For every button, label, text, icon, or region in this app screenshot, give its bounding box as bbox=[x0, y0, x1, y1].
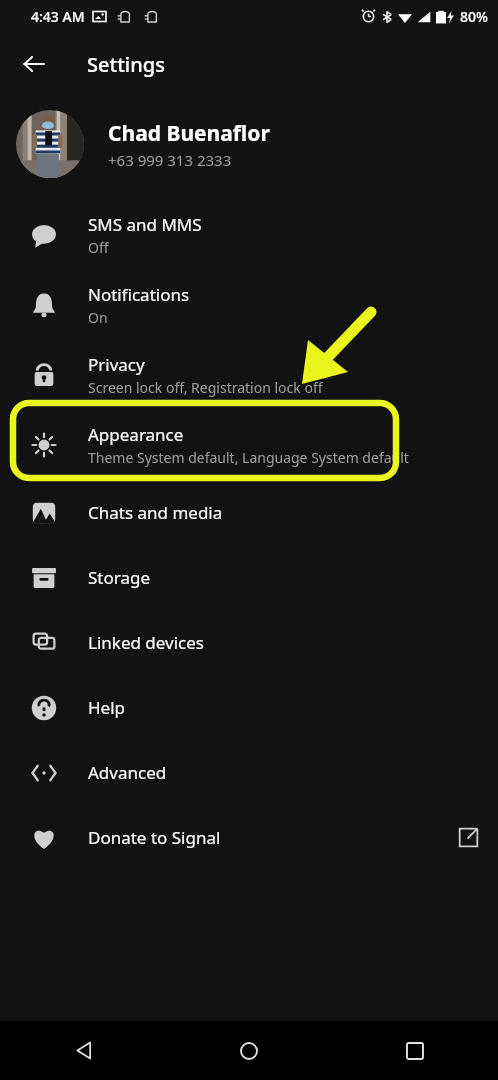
button[interactable]: Donate to Signal bbox=[0, 805, 498, 870]
staticText: Storage bbox=[88, 566, 151, 589]
staticText: 4:43 AM bbox=[31, 7, 85, 26]
staticText: Chats and media bbox=[88, 501, 223, 524]
staticText: Screen lock off, Registration lock off bbox=[88, 378, 323, 397]
button[interactable]: Back bbox=[10, 40, 58, 88]
button[interactable]: SMS and MMS bbox=[0, 200, 498, 270]
button[interactable]: Chad Buenaflor bbox=[0, 96, 498, 192]
button[interactable]: Privacy bbox=[0, 340, 498, 410]
button[interactable]: Notifications bbox=[0, 270, 498, 340]
staticText: 80% bbox=[460, 7, 488, 26]
button[interactable]: Home bbox=[166, 1021, 332, 1080]
staticText: Linked devices bbox=[88, 631, 204, 654]
button[interactable]: Linked devices bbox=[0, 610, 498, 675]
staticText: Chad Buenaflor bbox=[108, 119, 270, 148]
staticText: Advanced bbox=[88, 761, 167, 784]
button[interactable]: Storage bbox=[0, 545, 498, 610]
button[interactable]: Help bbox=[0, 675, 498, 740]
staticText: Off bbox=[88, 238, 109, 257]
staticText: Settings bbox=[87, 51, 165, 78]
staticText: Privacy bbox=[88, 353, 145, 376]
button[interactable]: Advanced bbox=[0, 740, 498, 805]
staticText: Theme System default, Language System de… bbox=[88, 448, 409, 467]
button[interactable]: Recents bbox=[332, 1021, 498, 1080]
staticText: On bbox=[88, 308, 108, 327]
staticText: +63 999 313 2333 bbox=[108, 150, 232, 170]
button[interactable]: Chats and media bbox=[0, 480, 498, 545]
staticText: Help bbox=[88, 696, 126, 719]
button[interactable]: Back bbox=[0, 1021, 166, 1080]
staticText: Notifications bbox=[88, 283, 190, 306]
staticText: Donate to Signal bbox=[88, 826, 221, 849]
staticText: SMS and MMS bbox=[88, 213, 202, 236]
button[interactable]: Appearance bbox=[0, 410, 498, 480]
staticText: Appearance bbox=[88, 423, 184, 446]
